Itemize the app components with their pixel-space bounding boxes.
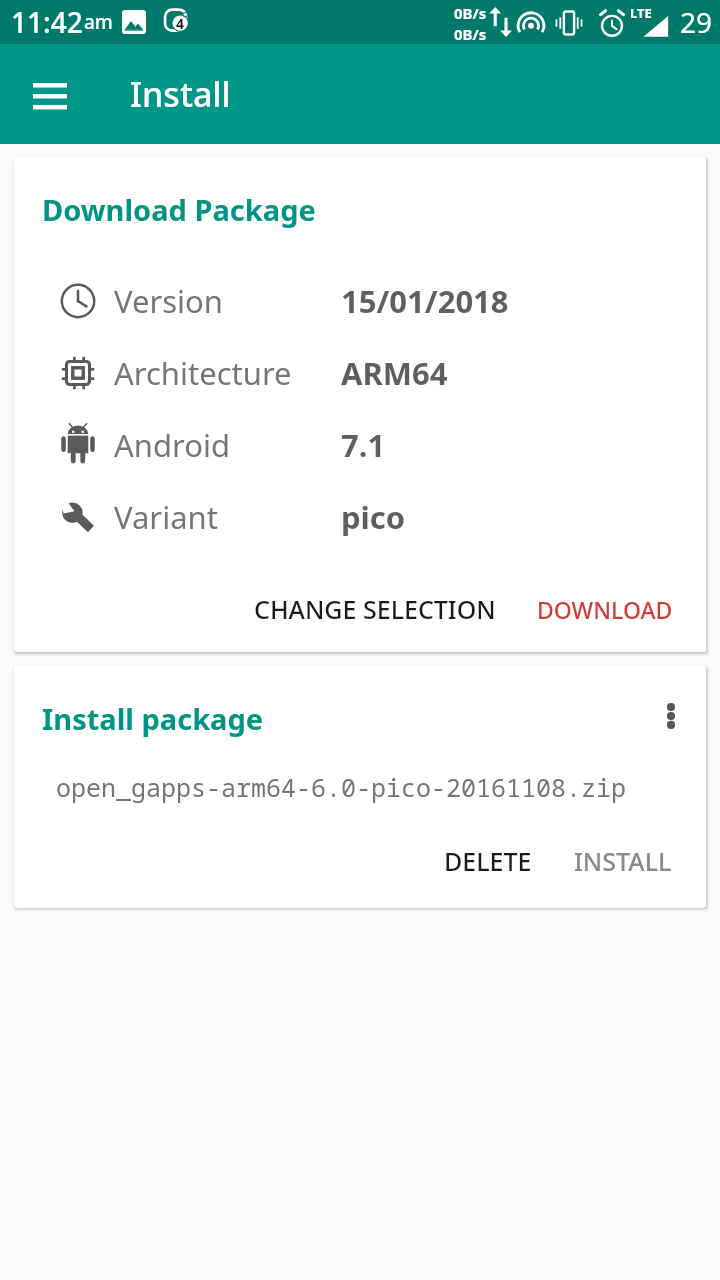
staticText: Install [130,71,231,117]
button[interactable]: DOWNLOAD [523,584,687,635]
staticText: INSTALL [574,844,672,878]
button[interactable]: More options [647,692,695,740]
staticText: Android [114,424,231,466]
staticText: Variant [114,496,218,538]
staticText: 7.1 [341,424,386,466]
staticText: LTE [630,4,652,22]
staticText: Download Package [42,190,316,229]
staticText: Architecture [114,352,292,394]
staticText: DELETE [444,844,532,878]
staticText: 0B/s [454,3,487,23]
staticText: pico [341,496,406,538]
button[interactable]: DELETE [430,834,546,888]
staticText: 11:42 [11,3,83,41]
staticText: CHANGE SELECTION [254,592,496,626]
staticText: 15/01/2018 [341,280,509,322]
staticText: open_gapps-arm64-6.0-pico-20161108.zip [56,770,627,804]
button[interactable]: CHANGE SELECTION [240,582,510,636]
button[interactable]: INSTALL [560,834,686,888]
staticText: Version [114,280,224,322]
staticText: 29 [680,3,713,41]
staticText: DOWNLOAD [537,594,673,625]
button[interactable]: Open navigation drawer [16,60,84,128]
staticText: 4 [176,14,185,33]
staticText: am [84,9,113,35]
staticText: Install package [42,699,264,738]
staticText: ARM64 [341,352,448,394]
staticText: 0B/s [454,24,487,44]
